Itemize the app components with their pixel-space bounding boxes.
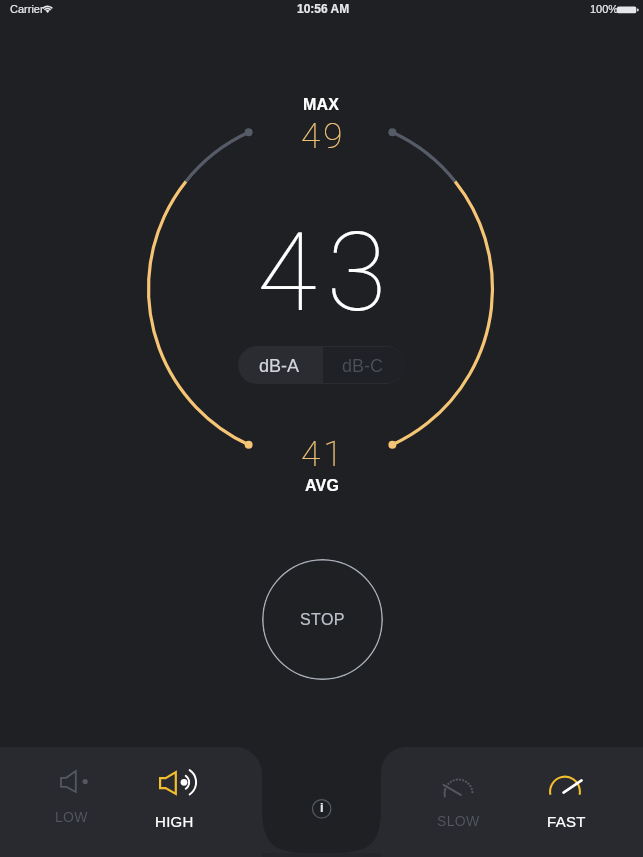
other: Low range: [60, 770, 88, 793]
staticText: 100%: [590, 3, 619, 15]
button[interactable]: Slow response: [406, 747, 510, 857]
staticText: dB-C: [342, 356, 384, 376]
other: Fast response: [548, 774, 584, 796]
staticText: dB-A: [259, 356, 300, 376]
other: Slow response: [441, 776, 477, 798]
staticText: Carrier: [10, 3, 44, 15]
button[interactable]: Info: [304, 791, 340, 827]
staticText: AVG: [305, 477, 340, 495]
staticText: SLOW: [437, 813, 480, 829]
staticText: 43: [257, 209, 397, 337]
button[interactable]: High range: [122, 747, 226, 857]
staticText: HIGH: [155, 813, 194, 830]
button[interactable]: Fast response: [514, 747, 618, 857]
button[interactable]: dB-A: [238, 346, 321, 384]
button[interactable]: Low range: [19, 747, 123, 857]
button[interactable]: STOP: [262, 559, 383, 680]
staticText: 49: [301, 116, 346, 157]
staticText: MAX: [303, 96, 340, 114]
other: High range: [159, 771, 200, 795]
staticText: 41: [301, 434, 346, 475]
staticText: FAST: [547, 813, 586, 830]
staticText: LOW: [55, 809, 88, 825]
button[interactable]: dB-C: [321, 346, 405, 384]
staticText: i: [320, 800, 324, 815]
staticText: 10:56 AM: [297, 2, 350, 15]
staticText: STOP: [300, 611, 345, 629]
